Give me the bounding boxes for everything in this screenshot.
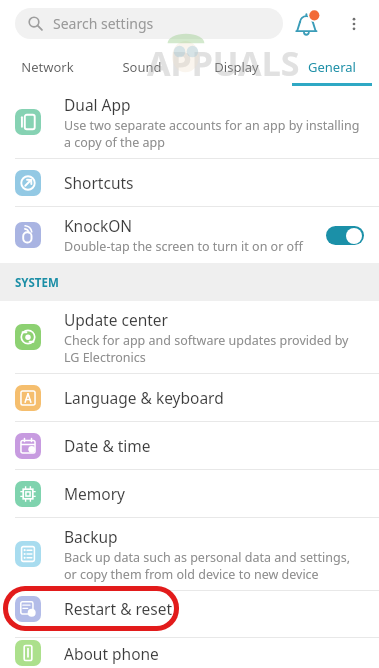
staticText: Check for app and software updates provi… xyxy=(64,332,364,365)
staticText: KnockON xyxy=(64,215,133,236)
staticText: APPUALS xyxy=(147,40,300,86)
staticText: Restart & reset xyxy=(64,604,173,625)
button[interactable]: About phone xyxy=(0,638,379,668)
button[interactable]: Network xyxy=(0,48,94,86)
staticText: Back up data such as personal data and s… xyxy=(64,549,364,582)
button[interactable]: Date & time xyxy=(0,422,379,469)
staticText: Language & keyboard xyxy=(64,387,224,408)
button[interactable]: Search settings xyxy=(15,8,283,39)
staticText: Date & time xyxy=(64,435,151,456)
staticText: Backup xyxy=(64,526,118,547)
button[interactable]: Language & keyboard xyxy=(0,374,379,421)
staticText: Network xyxy=(21,58,74,76)
button[interactable]: Dual App xyxy=(0,86,379,158)
staticText: Dual App xyxy=(64,94,131,115)
staticText: Shortcuts xyxy=(64,172,134,193)
staticText: Display xyxy=(214,58,259,76)
button[interactable]: KnockON toggle, on xyxy=(326,226,364,245)
button[interactable]: Restart & reset xyxy=(0,591,379,637)
button[interactable]: Notifications, 2 new xyxy=(292,6,328,42)
button[interactable]: Backup xyxy=(0,518,379,590)
staticText: Restart & reset xyxy=(64,598,173,619)
button[interactable]: Memory xyxy=(0,470,379,517)
staticText: Search settings xyxy=(53,14,154,33)
button[interactable]: More options xyxy=(338,8,370,40)
staticText: Double-tap the screen to turn it on or o… xyxy=(64,238,303,255)
staticText: About phone xyxy=(64,643,159,664)
button[interactable]: Restart & reset xyxy=(15,586,179,631)
staticText: Memory xyxy=(64,483,125,504)
button[interactable]: Shortcuts xyxy=(0,159,379,206)
button[interactable]: Display xyxy=(189,48,284,86)
button[interactable]: Sound xyxy=(94,48,189,86)
button[interactable]: General xyxy=(284,48,379,86)
staticText: Sound xyxy=(122,58,162,76)
staticText: Use two separate accounts for an app by … xyxy=(64,117,364,150)
button[interactable]: Update center xyxy=(0,301,379,373)
staticText: General xyxy=(308,58,356,76)
staticText: SYSTEM xyxy=(15,275,59,291)
staticText: Update center xyxy=(64,309,168,330)
button[interactable]: KnockON xyxy=(0,207,379,263)
